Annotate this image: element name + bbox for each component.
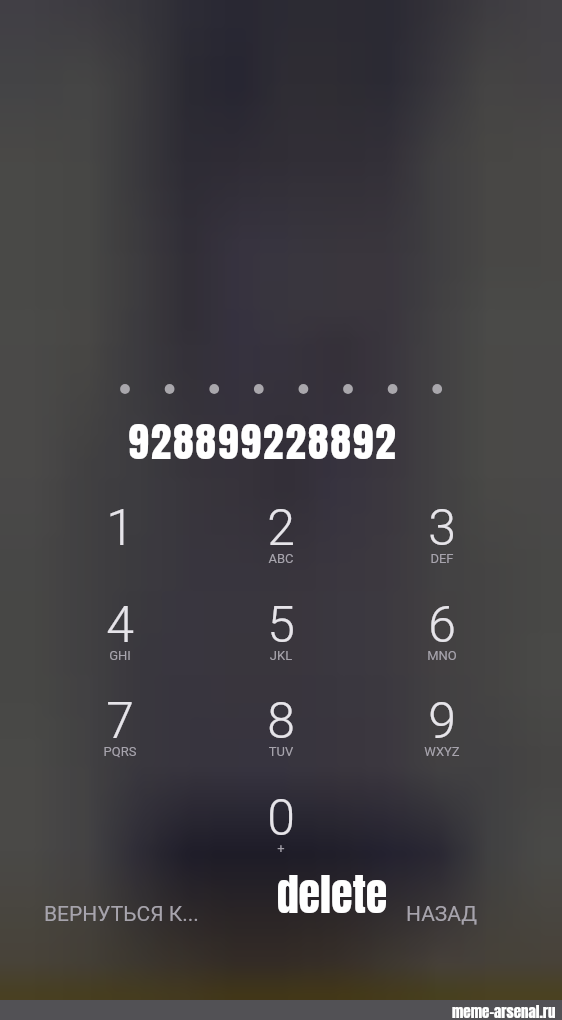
staticText: GHI xyxy=(70,648,170,663)
button[interactable]: 5 xyxy=(231,596,331,672)
staticText: meme-arsenal.ru xyxy=(452,1000,556,1020)
staticText: ВЕРНУТЬСЯ К... xyxy=(44,902,199,927)
staticText: DEF xyxy=(392,551,492,566)
staticText: 2 xyxy=(231,499,331,558)
staticText: delete xyxy=(51,861,562,927)
staticText: JKL xyxy=(231,648,331,663)
staticText: 1 xyxy=(70,499,170,558)
button[interactable]: 0 xyxy=(231,789,331,865)
staticText: MNO xyxy=(392,648,492,663)
button[interactable]: ВЕРНУТЬСЯ К... xyxy=(44,902,199,927)
staticText: 928899228892 xyxy=(0,411,544,473)
staticText: 0 xyxy=(231,789,331,848)
staticText: TUV xyxy=(231,744,331,759)
staticText: 4 xyxy=(70,596,170,655)
button[interactable]: 4 xyxy=(70,596,170,672)
button[interactable]: НАЗАД xyxy=(406,902,478,927)
staticText: 5 xyxy=(231,596,331,655)
staticText: 6 xyxy=(392,596,492,655)
staticText: PQRS xyxy=(70,744,170,759)
staticText: WXYZ xyxy=(392,744,492,759)
button[interactable]: 8 xyxy=(231,692,331,768)
staticText: ABC xyxy=(231,551,331,566)
staticText: 8 xyxy=(231,692,331,751)
staticText: 7 xyxy=(70,692,170,751)
staticText: + xyxy=(231,841,331,856)
staticText: НАЗАД xyxy=(406,902,478,927)
button[interactable]: 1 xyxy=(70,499,170,575)
button[interactable]: 9 xyxy=(392,692,492,768)
staticText: 3 xyxy=(392,499,492,558)
button[interactable]: 2 xyxy=(231,499,331,575)
button[interactable]: 6 xyxy=(392,596,492,672)
staticText: 9 xyxy=(392,692,492,751)
button[interactable]: 3 xyxy=(392,499,492,575)
button[interactable]: 7 xyxy=(70,692,170,768)
